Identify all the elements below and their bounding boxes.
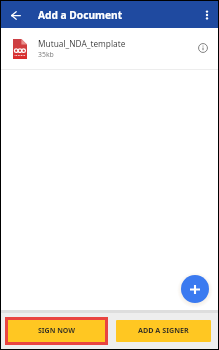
button[interactable]: SIGN NOW [8, 320, 105, 342]
button[interactable]: Info [193, 38, 213, 58]
staticText: 35kb [38, 50, 54, 59]
button[interactable]: Mutual_NDA_template [1, 28, 218, 69]
staticText: Mutual_NDA_template [38, 38, 126, 49]
staticText: Add a Document [38, 8, 123, 22]
staticText: ADD A SIGNER [138, 325, 189, 335]
button[interactable]: Add document [181, 275, 209, 303]
button[interactable]: Back [5, 4, 27, 26]
button[interactable]: ADD A SIGNER [116, 320, 211, 342]
staticText: SIGN NOW [38, 326, 76, 336]
button[interactable]: More options [196, 4, 218, 26]
